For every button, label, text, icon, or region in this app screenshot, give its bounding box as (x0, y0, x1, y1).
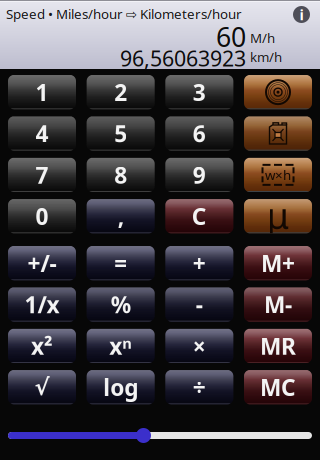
staticText: MR (260, 331, 296, 361)
button[interactable]: + (165, 246, 233, 280)
button[interactable]: 2 (87, 75, 155, 109)
staticText: 96,56063923 (120, 44, 246, 72)
button[interactable]: 6 (165, 116, 233, 151)
button[interactable]: 8 (87, 158, 155, 192)
staticText: = (114, 248, 127, 278)
button[interactable]: +/- (8, 246, 76, 280)
staticText: 9 (193, 160, 206, 190)
staticText: √ (34, 374, 49, 400)
staticText: i (299, 5, 303, 24)
button[interactable]: , (87, 199, 155, 233)
button[interactable]: 1/x (8, 287, 76, 322)
staticText: w×h (265, 166, 291, 184)
staticText: % (111, 289, 131, 319)
staticText: km/h (250, 48, 282, 66)
staticText: 8 (114, 160, 127, 190)
staticText: MC (260, 372, 296, 402)
button[interactable] (244, 75, 312, 109)
button[interactable]: 5 (87, 116, 155, 151)
button[interactable]: μ (244, 199, 312, 233)
staticText: μ (266, 191, 289, 239)
staticText: + (193, 248, 206, 278)
button[interactable]: x² (8, 329, 76, 363)
staticText: × (193, 331, 206, 361)
button[interactable]: 3 (165, 75, 233, 109)
staticText: 0 (35, 201, 48, 231)
staticText: 60 (216, 19, 246, 54)
button[interactable]: MC (244, 370, 312, 404)
button[interactable]: MR (244, 329, 312, 363)
staticText: 6 (193, 118, 206, 148)
staticText: - (196, 289, 203, 319)
staticText: ÷ (193, 372, 206, 402)
button[interactable]: Info (293, 6, 310, 23)
button[interactable]: = (87, 246, 155, 280)
staticText: log (103, 372, 138, 402)
staticText: 5 (114, 118, 127, 148)
button[interactable]: ÷ (165, 370, 233, 404)
button[interactable]: × (165, 329, 233, 363)
button[interactable]: 7 (8, 158, 76, 192)
button[interactable]: 1 (8, 75, 76, 109)
staticText: 1/x (24, 289, 59, 319)
button[interactable]: C (165, 199, 233, 233)
staticText: xⁿ (109, 331, 132, 361)
button[interactable]: M+ (244, 246, 312, 280)
staticText: 7 (35, 160, 48, 190)
staticText: C (192, 201, 207, 231)
button[interactable]: log (87, 370, 155, 404)
staticText: M+ (261, 248, 295, 278)
button[interactable]: - (165, 287, 233, 322)
staticText: M/h (250, 29, 275, 47)
button[interactable]: w×h (244, 158, 312, 192)
button[interactable]: % (87, 287, 155, 322)
button[interactable] (244, 116, 312, 151)
button[interactable]: M- (244, 287, 312, 322)
staticText: +/- (27, 248, 56, 278)
staticText: x² (31, 331, 53, 361)
staticText: 3 (193, 77, 206, 107)
button[interactable]: √ (8, 370, 76, 404)
staticText: M- (264, 289, 292, 319)
staticText: 4 (35, 118, 48, 148)
button[interactable]: 9 (165, 158, 233, 192)
staticText: 1 (35, 77, 48, 107)
button[interactable]: 0 (8, 199, 76, 233)
staticText: Speed • Miles/hour ⇨ Kilometers/hour (6, 5, 242, 23)
staticText: , (118, 201, 124, 231)
staticText: 2 (114, 77, 127, 107)
button[interactable]: 4 (8, 116, 76, 151)
button[interactable]: xⁿ (87, 329, 155, 363)
